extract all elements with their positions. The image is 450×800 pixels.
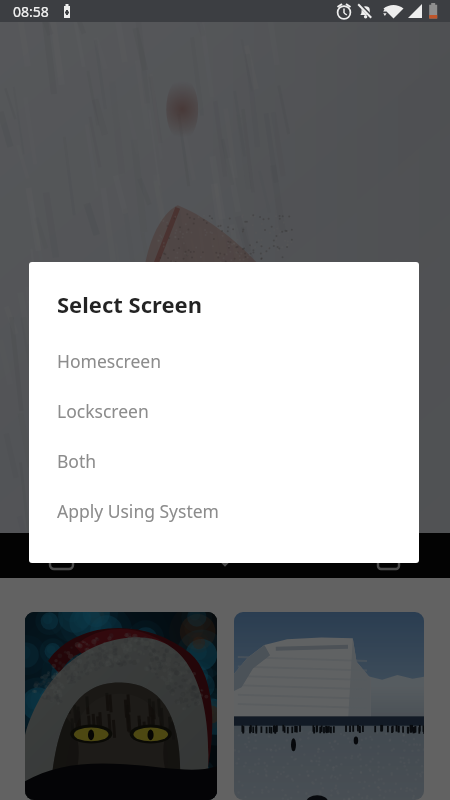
button[interactable]: Recents (368, 544, 410, 568)
staticText: Select Screen (57, 289, 203, 319)
button[interactable]: Homescreen (29, 336, 419, 386)
button[interactable] (25, 612, 217, 800)
button[interactable]: Both (29, 436, 419, 486)
staticText: Both (57, 449, 97, 473)
button[interactable]: Apply Using System (29, 486, 419, 536)
staticText: 08:58 (13, 2, 49, 21)
staticText: Apply Using System (57, 499, 219, 523)
button[interactable]: Home (205, 544, 245, 568)
staticText: Homescreen (57, 349, 162, 373)
button[interactable] (234, 612, 424, 800)
button[interactable]: Back (40, 544, 82, 568)
button[interactable]: Lockscreen (29, 386, 419, 436)
staticText: Lockscreen (57, 399, 149, 423)
